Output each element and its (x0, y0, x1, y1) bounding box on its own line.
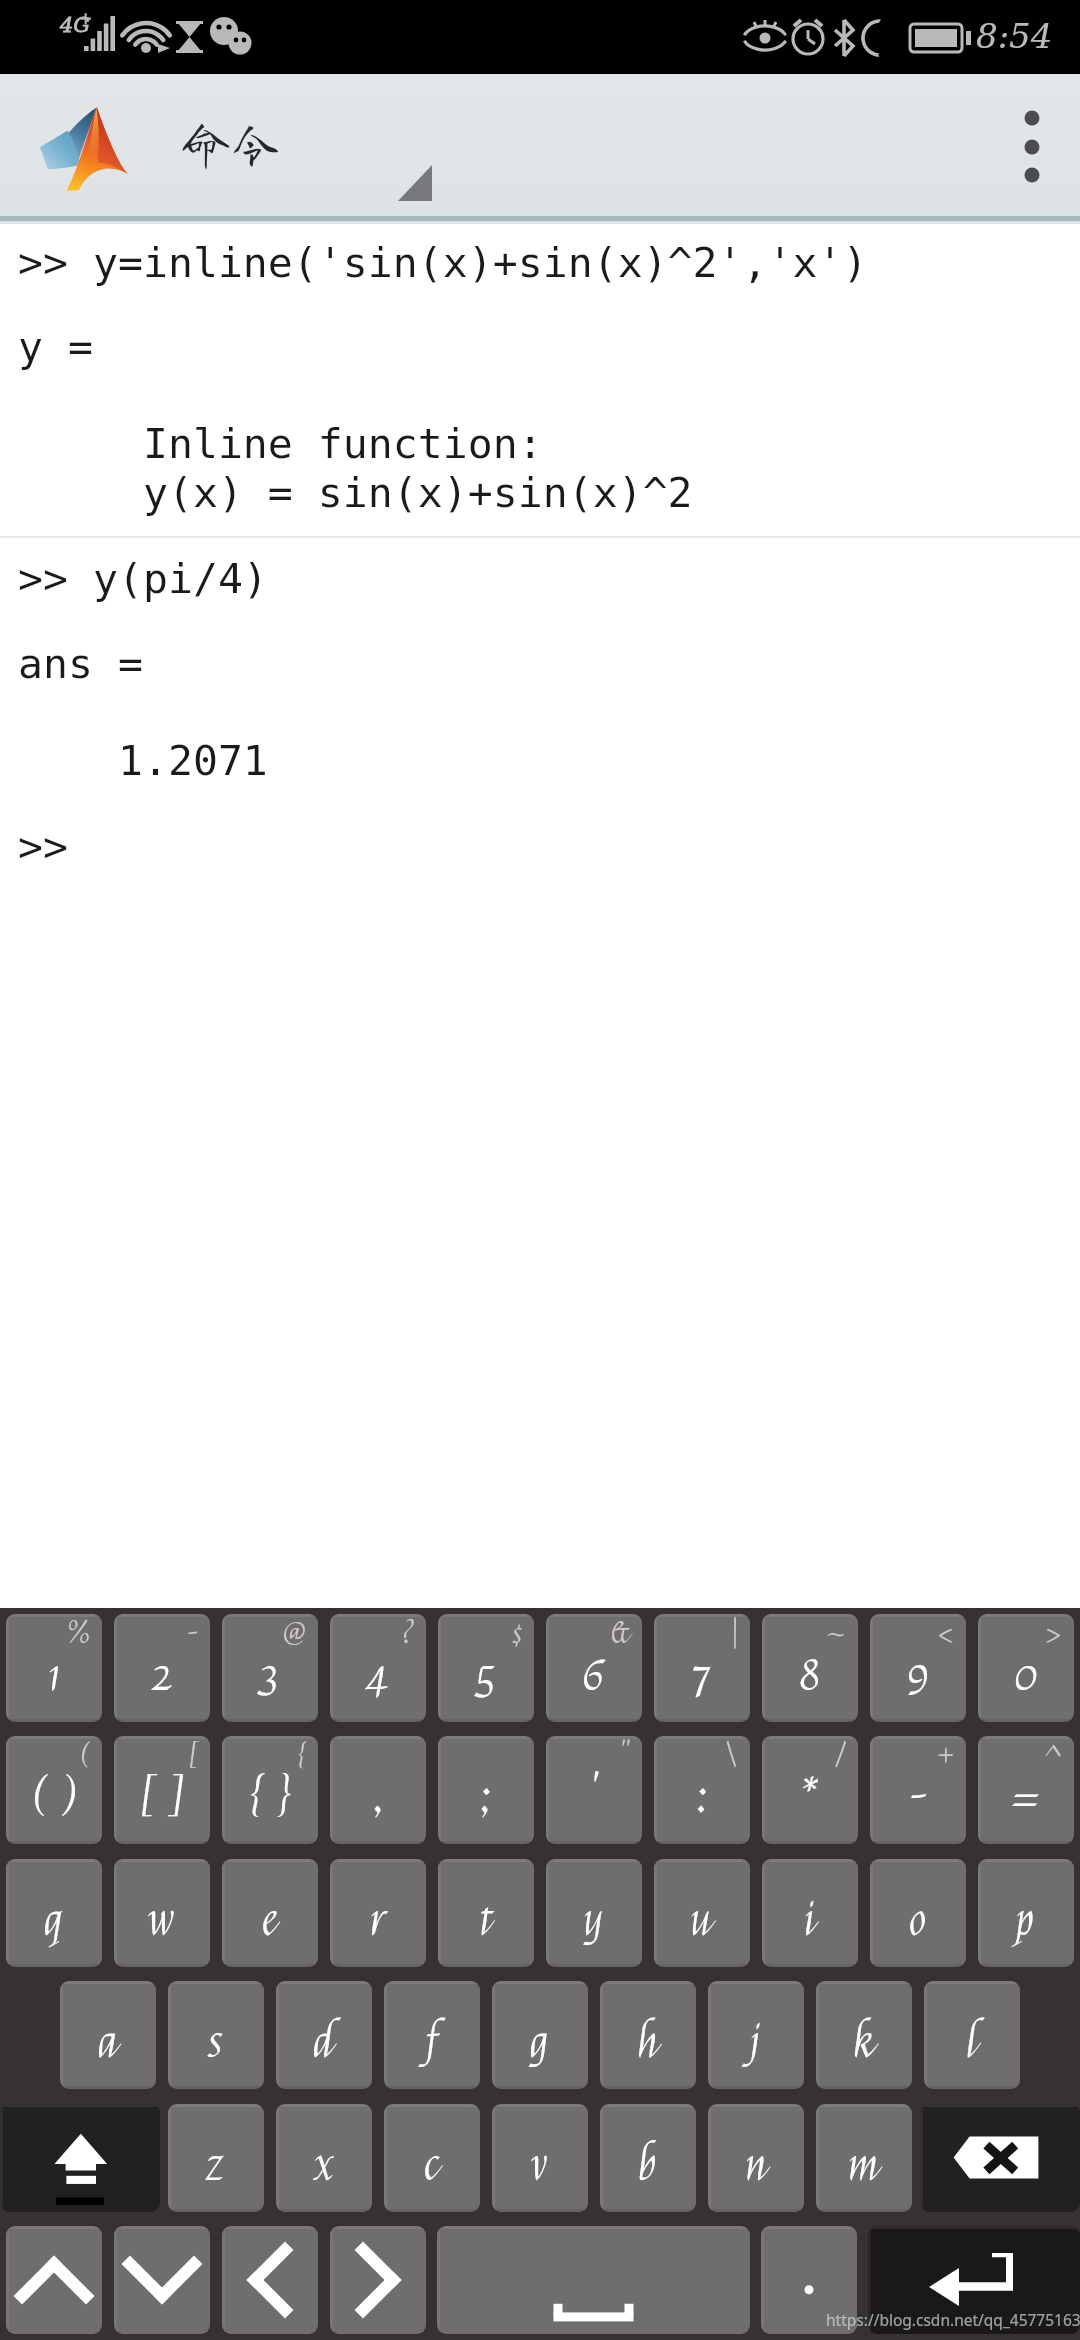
staticText: f (427, 2013, 438, 2072)
staticText: x (316, 2136, 333, 2195)
staticText: 1 (47, 1646, 62, 1705)
staticText: + (79, 9, 93, 28)
button[interactable]: \ (654, 1736, 750, 1844)
staticText: < (936, 1616, 955, 1652)
staticText: q (45, 1891, 63, 1950)
staticText: " (620, 1738, 631, 1774)
button[interactable]: z (168, 2104, 264, 2212)
staticText: 9 (907, 1646, 930, 1705)
staticText: r (371, 1891, 385, 1950)
button[interactable]: , (330, 1736, 426, 1844)
staticText: % (68, 1616, 91, 1652)
button[interactable]: l (924, 1981, 1020, 2089)
button[interactable]: ( (6, 1736, 102, 1844)
staticText: { } (247, 1768, 293, 1827)
staticText: e (263, 1891, 277, 1950)
staticText: >> (18, 822, 68, 870)
button[interactable]: t (438, 1859, 534, 1967)
button[interactable]: Right (330, 2226, 426, 2334)
button[interactable]: - (114, 1614, 210, 1722)
button[interactable]: c (384, 2104, 480, 2212)
staticText: ? (402, 1616, 415, 1652)
button[interactable]: Up (6, 2226, 102, 2334)
button[interactable]: k (816, 1981, 912, 2089)
staticText: >> y(pi/4) (18, 554, 268, 602)
button[interactable]: $ (438, 1614, 534, 1722)
button[interactable]: g (492, 1981, 588, 2089)
staticText: ans = (18, 639, 143, 687)
button[interactable]: b (600, 2104, 696, 2212)
button[interactable]: y (546, 1859, 642, 1967)
button[interactable]: f (384, 1981, 480, 2089)
staticText: , (372, 1768, 385, 1827)
button[interactable]: More options (990, 74, 1074, 212)
button[interactable]: m (816, 2104, 912, 2212)
button[interactable]: % (6, 1614, 102, 1722)
button[interactable]: " (546, 1736, 642, 1844)
staticText: 4 (367, 1646, 389, 1705)
staticText: 6 (582, 1646, 606, 1705)
staticText: d (314, 2013, 334, 2072)
staticText: j (751, 2013, 761, 2072)
button[interactable]: x (276, 2104, 372, 2212)
button[interactable]: h (600, 1981, 696, 2089)
staticText: a (99, 2013, 118, 2072)
button[interactable]: o (870, 1859, 966, 1967)
staticText: s (209, 2013, 223, 2072)
button[interactable]: @ (222, 1614, 318, 1722)
button[interactable]: v (492, 2104, 588, 2212)
button[interactable]: ; (438, 1736, 534, 1844)
staticText: - (909, 1768, 928, 1827)
button[interactable]: + (870, 1736, 966, 1844)
button[interactable]: ^ (978, 1736, 1074, 1844)
staticText: : (695, 1768, 710, 1827)
button[interactable]: Enter (868, 2226, 1080, 2334)
staticText: | (731, 1616, 739, 1652)
button[interactable]: ~ (762, 1614, 858, 1722)
staticText: ' (589, 1768, 600, 1827)
staticText: b (639, 2136, 657, 2195)
button[interactable]: u (654, 1859, 750, 1967)
button[interactable]: Shift (0, 2104, 160, 2212)
button[interactable]: | (654, 1614, 750, 1722)
staticText: & (611, 1616, 631, 1652)
button[interactable]: > (978, 1614, 1074, 1722)
button[interactable]: q (6, 1859, 102, 1967)
staticText: 4G (60, 13, 91, 37)
button[interactable]: e (222, 1859, 318, 1967)
staticText: * (799, 1768, 822, 1827)
button[interactable]: j (708, 1981, 804, 2089)
button[interactable]: p (978, 1859, 1074, 1967)
button[interactable]: Period (761, 2226, 857, 2334)
button[interactable]: ? (330, 1614, 426, 1722)
button[interactable]: n (708, 2104, 804, 2212)
button[interactable]: Left (222, 2226, 318, 2334)
staticText: = (1011, 1768, 1041, 1827)
button[interactable]: [ (114, 1736, 210, 1844)
staticText: { (296, 1738, 307, 1774)
button[interactable]: Space (437, 2226, 750, 2334)
staticText: [ ] (137, 1768, 188, 1827)
button[interactable]: / (762, 1736, 858, 1844)
button[interactable]: d (276, 1981, 372, 2089)
staticText: v (532, 2136, 548, 2195)
button[interactable]: i (762, 1859, 858, 1967)
button[interactable]: Backspace (920, 2104, 1080, 2212)
button[interactable]: < (870, 1614, 966, 1722)
button[interactable]: a (60, 1981, 156, 2089)
staticText: [ (187, 1738, 199, 1774)
button[interactable]: r (330, 1859, 426, 1967)
staticText: y = (18, 322, 93, 370)
staticText: ; (479, 1768, 494, 1827)
staticText: y (584, 1891, 604, 1950)
button[interactable]: Down (114, 2226, 210, 2334)
staticText: k (854, 2013, 875, 2072)
button[interactable]: & (546, 1614, 642, 1722)
button[interactable]: s (168, 1981, 264, 2089)
button[interactable]: { (222, 1736, 318, 1844)
staticText: $ (513, 1616, 523, 1652)
staticText: @ (282, 1616, 307, 1652)
staticText: o (910, 1891, 927, 1950)
staticText: u (691, 1891, 713, 1950)
button[interactable]: w (114, 1859, 210, 1967)
